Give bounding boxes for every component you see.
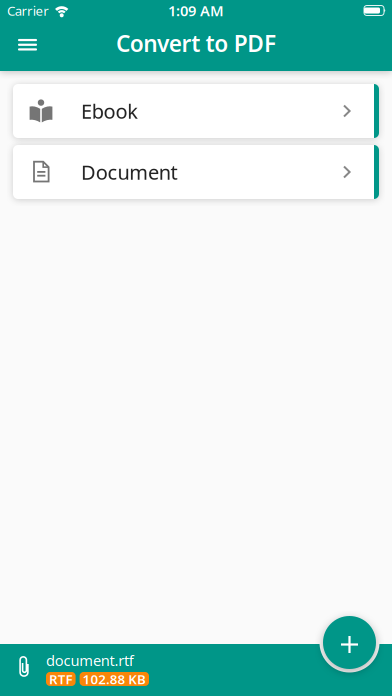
button[interactable]: Document xyxy=(13,145,379,199)
staticText: Ebook xyxy=(81,98,138,124)
button[interactable]: Menu xyxy=(0,36,37,51)
staticText: 1:09 AM xyxy=(168,1,224,20)
staticText: 102.88 KB xyxy=(83,670,146,688)
staticText: Document xyxy=(81,159,178,185)
button[interactable]: Ebook xyxy=(13,84,379,138)
staticText: Carrier xyxy=(7,2,49,19)
staticText: document.rtf xyxy=(46,650,134,670)
staticText: RTF xyxy=(49,670,73,688)
button[interactable]: Add file xyxy=(323,616,376,669)
button[interactable]: document.rtf xyxy=(0,644,149,686)
staticText: Convert to PDF xyxy=(116,28,276,58)
